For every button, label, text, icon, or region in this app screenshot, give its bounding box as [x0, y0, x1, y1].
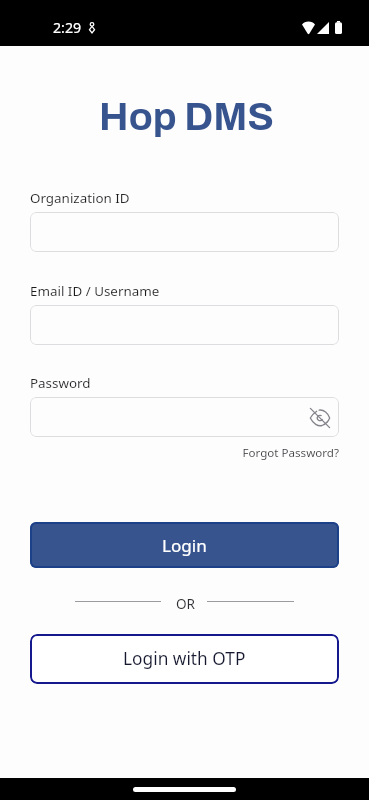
button[interactable]: Show password: [308, 405, 332, 429]
staticText: Email ID / Username: [30, 282, 160, 300]
staticText: 2:29: [53, 18, 82, 37]
staticText: Hop DMS: [2, 96, 369, 139]
button[interactable]: Show password: [30, 397, 339, 437]
staticText: Login with OTP: [123, 647, 246, 671]
button[interactable]: Forgot Password?: [30, 445, 339, 461]
staticText: Password: [30, 374, 91, 392]
staticText: OR: [176, 594, 196, 610]
staticText: Organization ID: [30, 189, 130, 207]
button[interactable]: [30, 305, 339, 345]
button[interactable]: Login with OTP: [30, 634, 339, 684]
staticText: Login: [162, 534, 207, 557]
button[interactable]: Login: [30, 522, 339, 568]
button[interactable]: [30, 212, 339, 252]
